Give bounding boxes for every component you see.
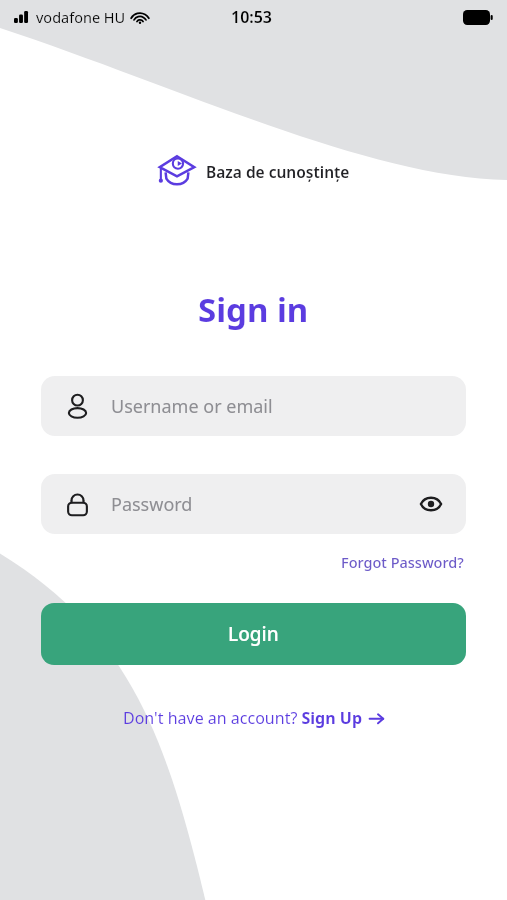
staticText: Forgot Password?: [341, 552, 464, 572]
button[interactable]: Show password: [416, 489, 446, 519]
staticText: Username or email: [111, 394, 273, 419]
button[interactable]: Username or email: [41, 376, 466, 436]
button[interactable]: Forgot Password?: [339, 550, 466, 574]
staticText: vodafone HU: [36, 7, 126, 27]
staticText: Baza de cunoștințe: [206, 161, 350, 182]
staticText: Sign in: [198, 287, 309, 332]
button[interactable]: Don't have an account? Sign Up: [117, 703, 390, 733]
staticText: Login: [228, 621, 279, 647]
button[interactable]: Login: [41, 603, 466, 665]
button[interactable]: Password: [41, 474, 466, 534]
staticText: Don't have an account? Sign Up: [123, 707, 362, 729]
staticText: 10:53: [231, 6, 273, 28]
staticText: Password: [111, 492, 416, 517]
